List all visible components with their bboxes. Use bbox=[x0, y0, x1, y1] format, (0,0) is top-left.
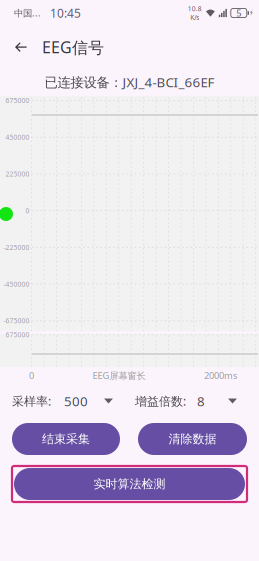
staticText: 中国... bbox=[14, 7, 41, 19]
button[interactable]: Sample rate bbox=[88, 390, 121, 412]
staticText: -450000 bbox=[3, 280, 29, 288]
button[interactable]: 结束采集 bbox=[12, 423, 120, 455]
staticText: 已连接设备：JXJ_4-BCI_66EF bbox=[44, 73, 214, 91]
staticText: 675000 bbox=[5, 96, 29, 105]
staticText: 500 bbox=[64, 392, 88, 410]
staticText: 225000 bbox=[5, 169, 29, 178]
staticText: 10:45 bbox=[50, 5, 81, 21]
staticText: 450000 bbox=[5, 133, 29, 142]
staticText: 10.8 bbox=[188, 4, 202, 13]
staticText: 采样率: bbox=[12, 393, 51, 409]
staticText: 结束采集 bbox=[42, 432, 90, 446]
staticText: 675000 bbox=[5, 330, 29, 339]
staticText: 清除数据 bbox=[168, 432, 216, 446]
button[interactable]: Back bbox=[8, 34, 34, 60]
button[interactable]: 清除数据 bbox=[138, 423, 247, 455]
staticText: -675000 bbox=[3, 316, 29, 325]
staticText: 0 bbox=[29, 369, 34, 382]
staticText: 0 bbox=[25, 206, 29, 215]
staticText: -225000 bbox=[3, 243, 29, 252]
button[interactable]: Gain bbox=[205, 390, 243, 412]
staticText: 8 bbox=[197, 392, 205, 410]
staticText: 增益倍数: bbox=[135, 393, 186, 409]
staticText: EEG屏幕窗长 bbox=[92, 369, 145, 382]
staticText: 2000ms bbox=[204, 369, 237, 382]
button[interactable]: 实时算法检测 bbox=[12, 466, 247, 502]
staticText: EEG信号 bbox=[42, 36, 104, 58]
staticText: 实时算法检测 bbox=[93, 477, 165, 491]
staticText: 5 bbox=[236, 7, 241, 19]
staticText: K/s bbox=[190, 13, 199, 22]
